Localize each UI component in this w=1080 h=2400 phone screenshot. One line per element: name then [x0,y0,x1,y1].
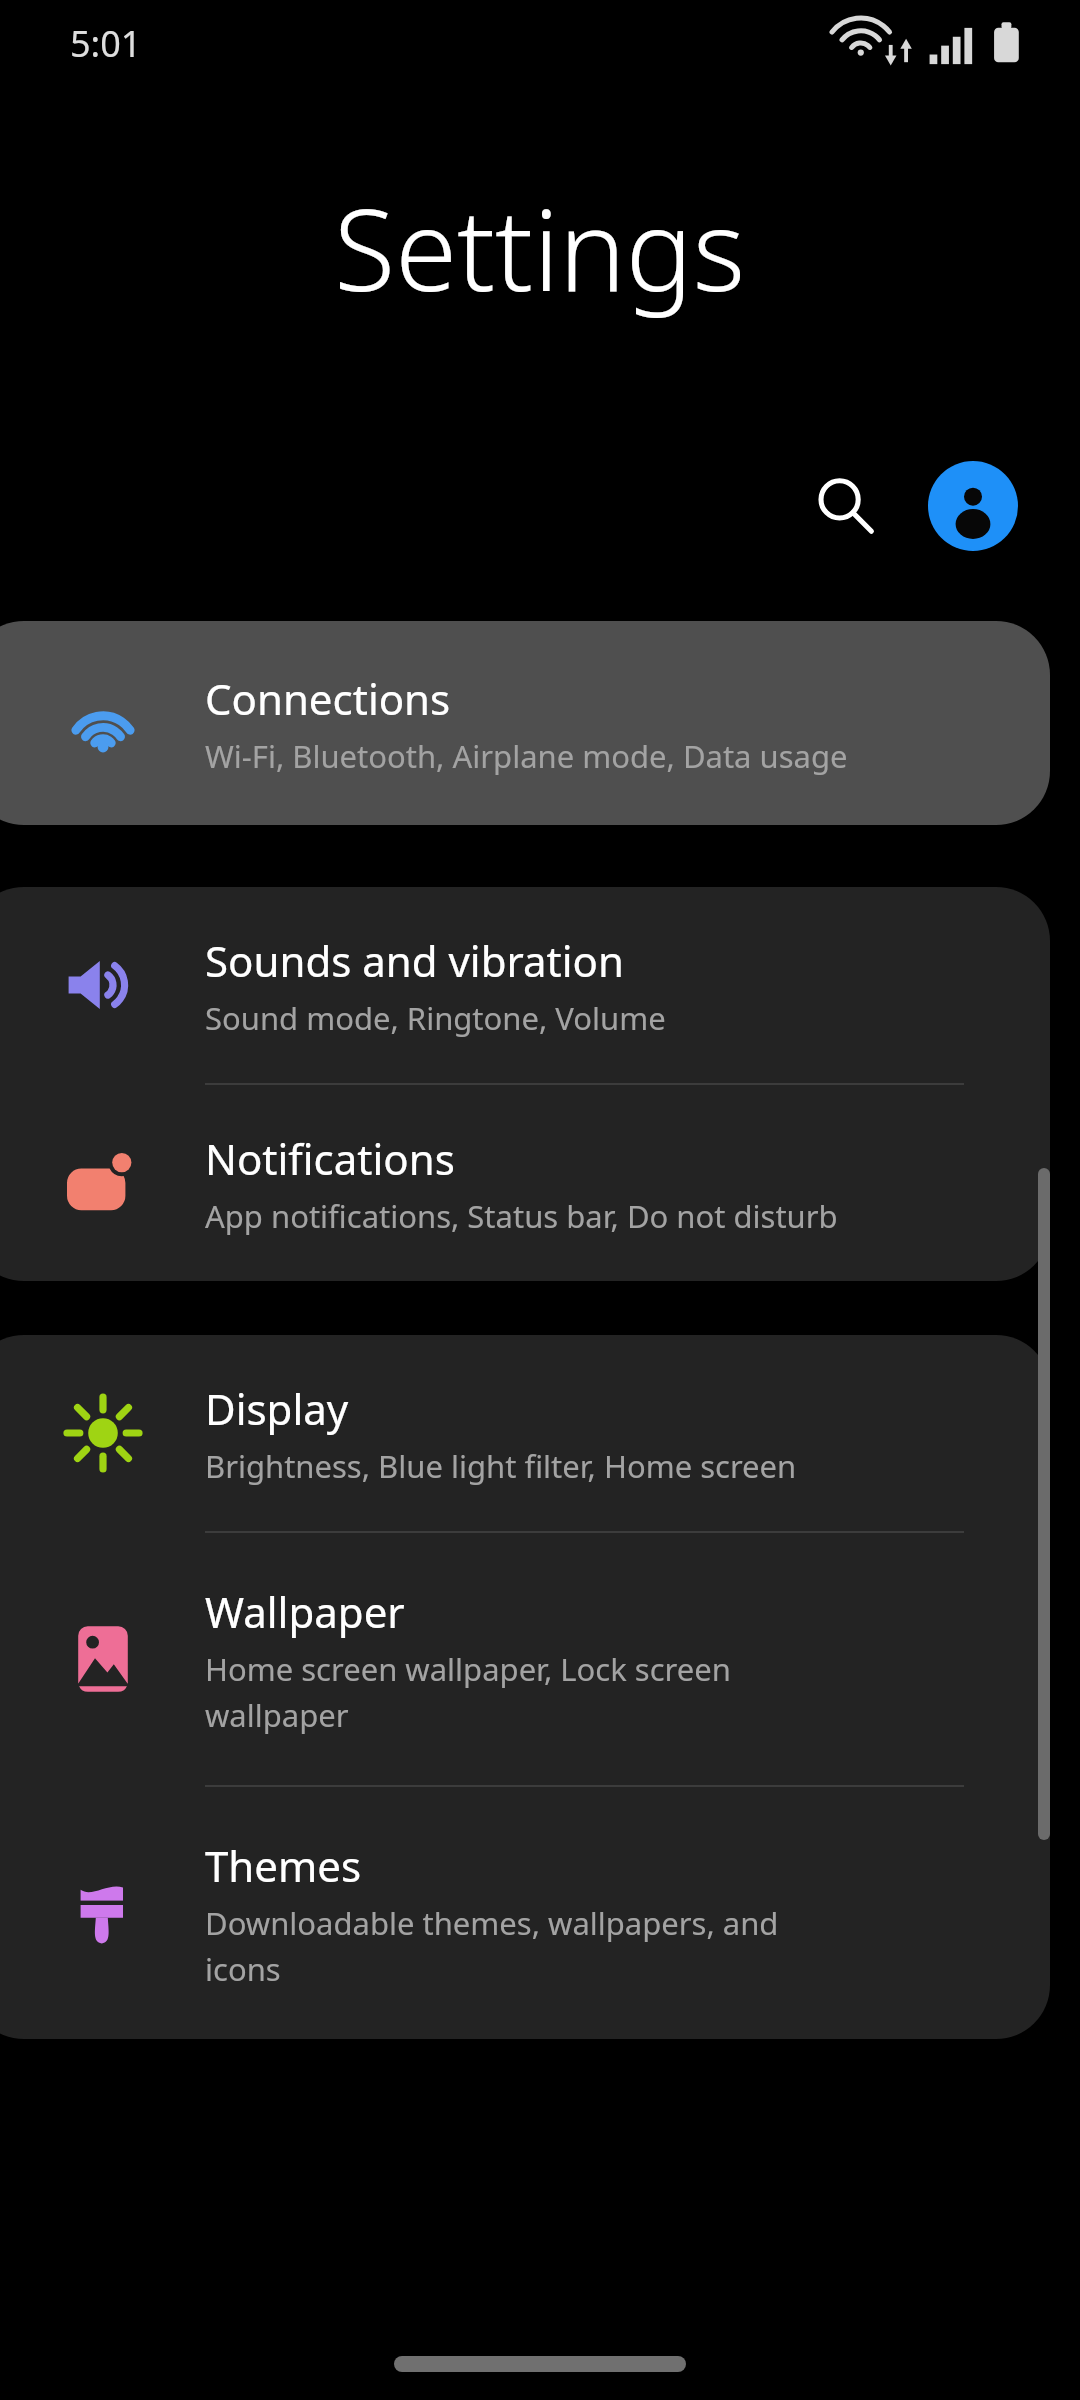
button[interactable]: Notifications [0,1085,1050,1281]
staticText: Notifications [205,1130,455,1187]
staticText: App notifications, Status bar, Do not di… [205,1195,838,1237]
staticText: Downloadable themes, wallpapers, and ico… [205,1902,850,1990]
staticText: Sounds and vibration [205,932,624,989]
staticText: Themes [205,1837,362,1894]
staticText: Brightness, Blue light filter, Home scre… [205,1445,797,1487]
other: Themes [63,1873,143,1953]
other: Notifications [63,1143,143,1223]
button[interactable]: Search [788,449,902,563]
staticText: Display [205,1380,349,1437]
button[interactable]: Themes [0,1787,1050,2039]
other: Wallpaper [63,1619,143,1699]
staticText: Sound mode, Ringtone, Volume [205,997,666,1039]
button[interactable]: Sounds and vibration [0,887,1050,1083]
staticText: Home screen wallpaper, Lock screen wallp… [205,1648,850,1736]
other: Display [63,1393,143,1473]
staticText: 5:01 [70,19,142,68]
other: Connections [63,683,143,763]
button[interactable]: Display [0,1335,1050,1531]
button[interactable]: Connections [0,621,1050,825]
staticText: Wallpaper [205,1583,405,1640]
staticText: Wi-Fi, Bluetooth, Airplane mode, Data us… [205,735,848,777]
staticText: Settings [334,171,746,324]
other: Sounds and vibration [63,945,143,1025]
button[interactable]: Account [916,449,1030,563]
button[interactable]: Wallpaper [0,1533,1050,1785]
staticText: Connections [205,670,451,727]
